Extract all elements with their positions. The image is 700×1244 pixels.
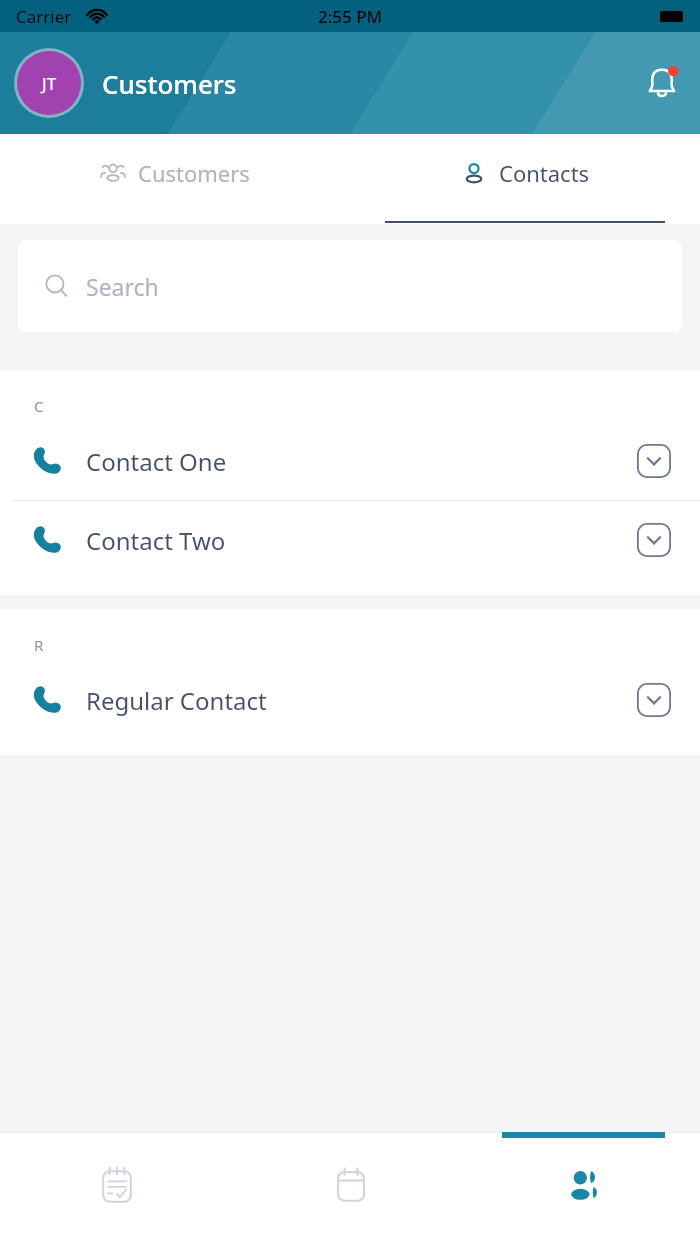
staticText: Customers [102,66,237,101]
staticText: JT [42,72,57,95]
staticText: Contact One [86,445,227,478]
button[interactable]: Expand [634,441,674,481]
staticText: C [34,396,44,416]
staticText: Search [86,271,159,302]
staticText: Contact Two [86,524,226,557]
button[interactable]: Contact One [0,422,700,500]
button[interactable]: Contacts [350,134,700,224]
staticText: R [34,635,44,655]
staticText: Carrier [16,5,72,28]
button[interactable]: Calendar [234,1132,467,1244]
button[interactable]: Expand [634,520,674,560]
button[interactable]: Tasks [0,1132,234,1244]
button[interactable]: Regular Contact [0,661,700,739]
button[interactable]: Contacts [467,1132,700,1244]
button[interactable]: Contact Two [0,501,700,579]
button[interactable]: Notifications [638,59,686,107]
button[interactable]: Customers [0,134,350,224]
staticText: Contacts [499,158,590,188]
button[interactable]: Search [18,240,682,332]
staticText: Regular Contact [86,684,267,717]
staticText: Customers [138,158,250,188]
staticText: 2:55 PM [318,5,383,28]
button[interactable]: Expand [634,680,674,720]
button[interactable]: Profile [14,48,84,118]
